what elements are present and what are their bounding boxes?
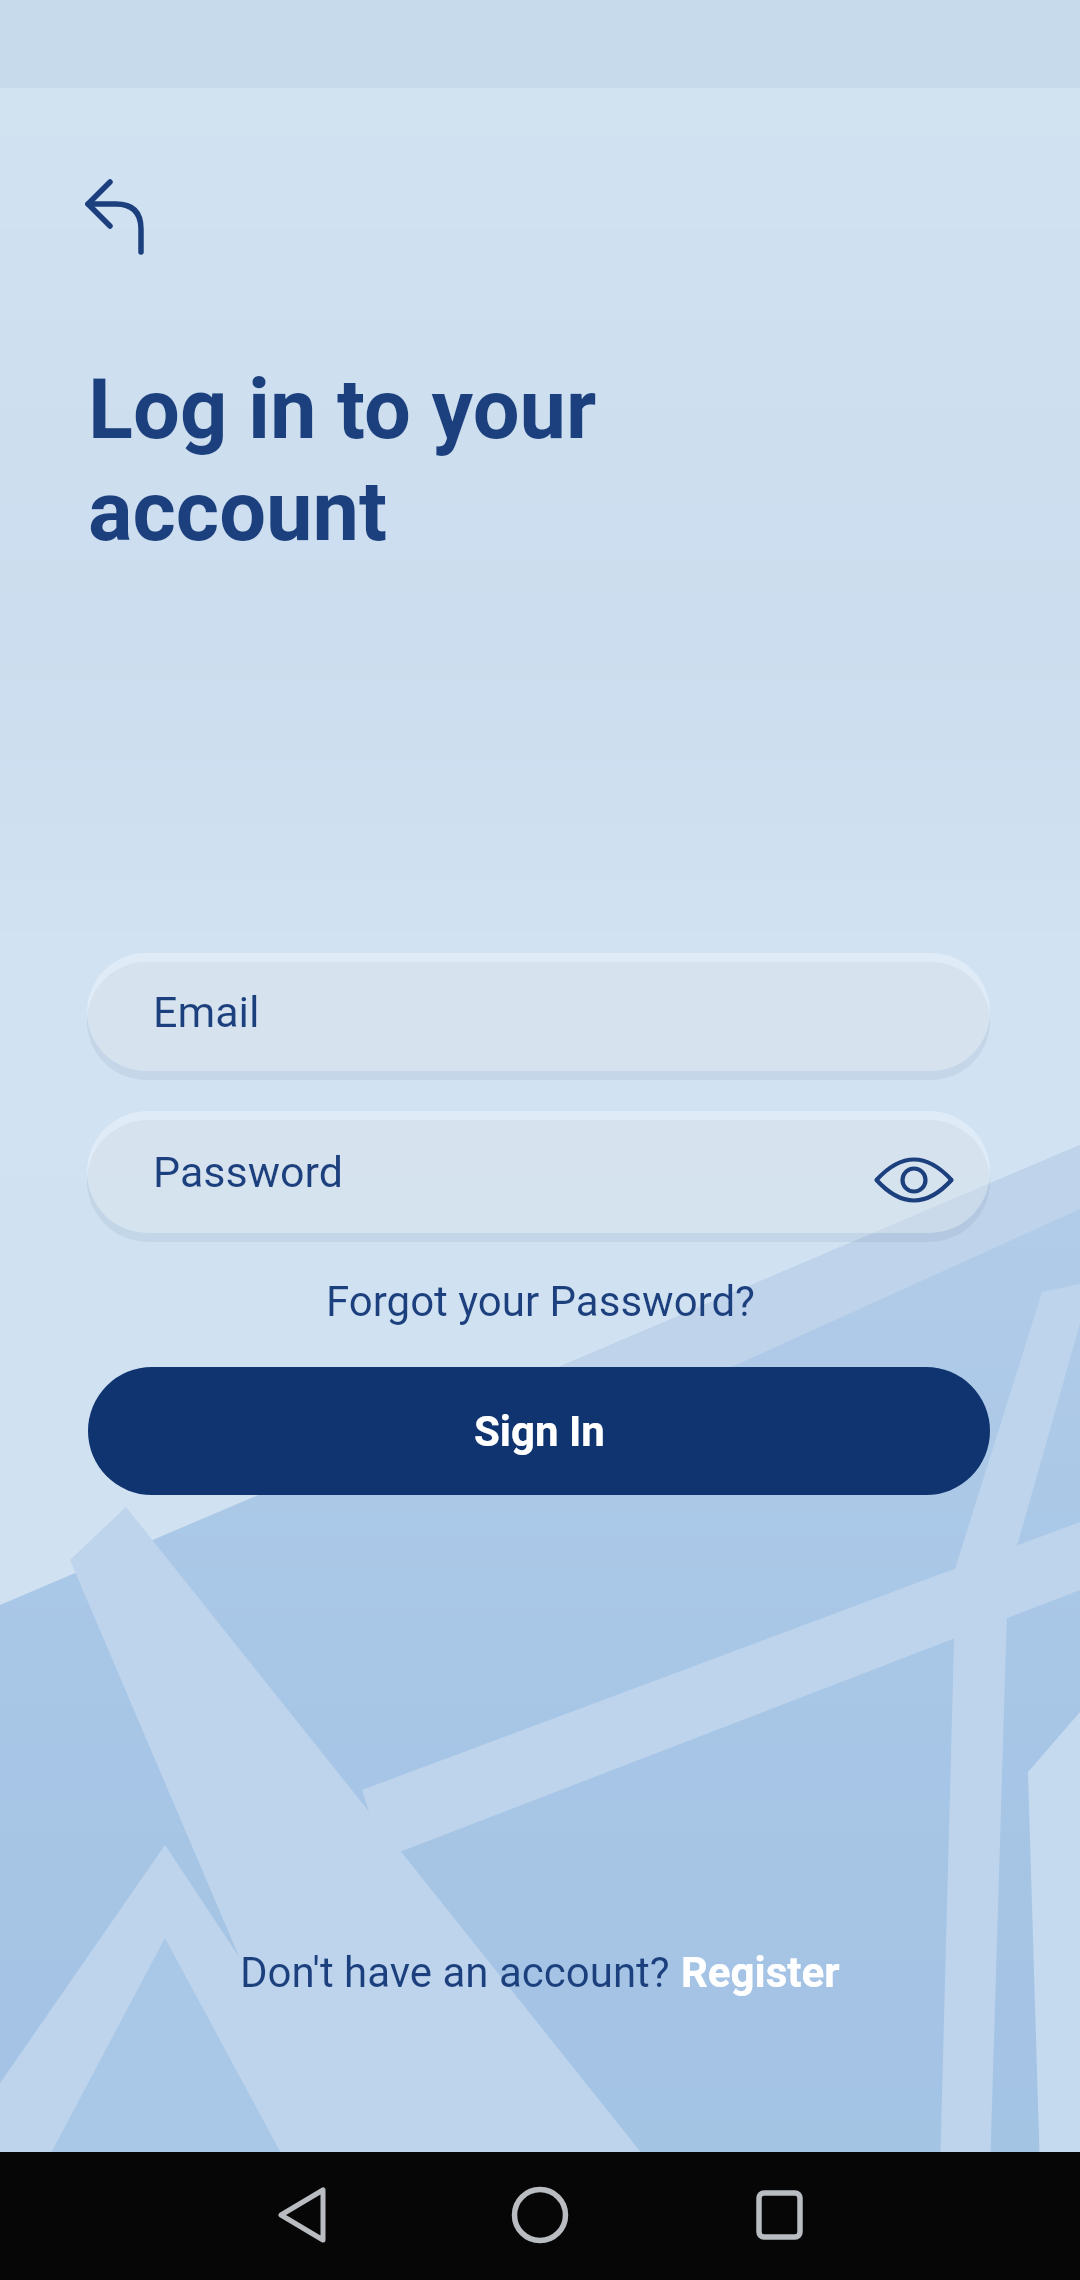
button[interactable]: Password <box>87 1111 990 1233</box>
button[interactable]: Sign In <box>88 1367 990 1495</box>
staticText: Sign In <box>474 1407 605 1456</box>
staticText: Log in to your account <box>88 361 597 560</box>
button[interactable]: Email <box>87 953 990 1071</box>
staticText: Don't have an account? <box>240 1948 681 1997</box>
staticText: Password <box>153 1147 343 1197</box>
button[interactable] <box>0 2152 360 2280</box>
button[interactable] <box>876 1156 952 1204</box>
button[interactable] <box>64 150 164 270</box>
button[interactable] <box>720 2152 1080 2280</box>
button[interactable]: Register <box>681 1948 840 1997</box>
button[interactable]: Forgot your Password? <box>326 1277 755 1326</box>
button[interactable] <box>360 2152 720 2280</box>
staticText: Email <box>153 987 260 1037</box>
